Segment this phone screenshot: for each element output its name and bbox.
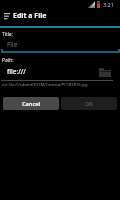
staticText: Path: [2,57,14,64]
button[interactable]: OK [61,97,117,110]
staticText: Edit a File [13,11,47,21]
button[interactable] [99,68,112,77]
button[interactable]: File [1,37,119,53]
staticText: Cancel [22,100,41,107]
staticText: 3:21 [103,1,114,8]
staticText: file:/// [7,67,26,76]
staticText: Title: [2,31,13,38]
staticText: ex) file:///sdcard/DCIM/Camera/PC183816.… [2,82,88,87]
staticText: OK [85,100,94,107]
staticText: File [7,40,18,49]
button[interactable]: Cancel [3,97,59,110]
button[interactable]: file:/// [1,64,113,81]
